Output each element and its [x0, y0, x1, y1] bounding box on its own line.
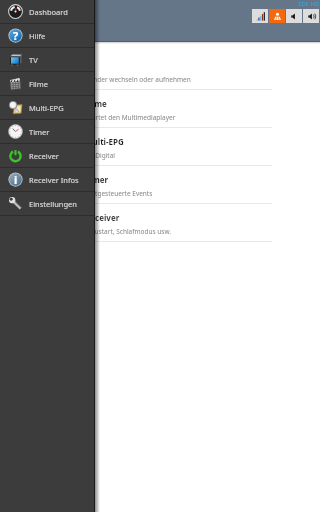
button[interactable]: Timer — [0, 166, 320, 204]
staticText: Hilfe — [29, 31, 46, 41]
button[interactable]: Volume up — [303, 9, 319, 23]
staticText: TV — [29, 55, 38, 65]
staticText: Filme — [29, 79, 49, 89]
staticText: ZDF HD — [298, 0, 320, 8]
button[interactable]: Dashboard — [0, 0, 94, 23]
button[interactable]: Signal strength — [252, 9, 268, 23]
button[interactable]: TV — [0, 48, 94, 71]
staticText: Timer — [29, 127, 50, 137]
staticText: i — [14, 172, 18, 187]
button[interactable]: Receiver — [0, 204, 320, 242]
button[interactable]: Filme — [0, 90, 320, 128]
staticText: TV — [85, 60, 95, 71]
staticText: Sender wechseln oder aufnehmen — [86, 75, 191, 84]
button[interactable]: Einstellungen — [0, 192, 94, 215]
staticText: Receiver Infos — [29, 175, 79, 185]
staticText: TV Digital — [86, 151, 115, 160]
button[interactable]: Volume down — [286, 9, 302, 23]
staticText: Receiver — [29, 151, 59, 161]
staticText: Timer — [85, 174, 109, 185]
staticText: Filme — [85, 98, 107, 109]
staticText: Receiver — [85, 212, 120, 223]
button[interactable]: i — [0, 168, 94, 191]
button[interactable]: ? — [0, 24, 94, 47]
staticText: ? — [13, 28, 19, 43]
button[interactable]: Timer — [0, 120, 94, 143]
button[interactable]: Users — [269, 9, 285, 23]
button[interactable]: Receiver — [0, 144, 94, 167]
button[interactable]: Multi-EPG — [0, 96, 94, 119]
staticText: Multi-EPG — [29, 103, 64, 113]
staticText: Dashboard — [29, 7, 68, 17]
button[interactable]: TV — [0, 52, 320, 90]
button[interactable]: Filme — [0, 72, 94, 95]
staticText: Startet den Multimediaplayer — [86, 113, 176, 122]
staticText: Neustart, Schlafmodus usw. — [86, 227, 172, 236]
staticText: Zeitgesteuerte Events — [86, 189, 153, 198]
staticText: Multi-EPG — [85, 136, 124, 147]
button[interactable]: Multi-EPG — [0, 128, 320, 166]
staticText: Einstellungen — [29, 199, 77, 209]
